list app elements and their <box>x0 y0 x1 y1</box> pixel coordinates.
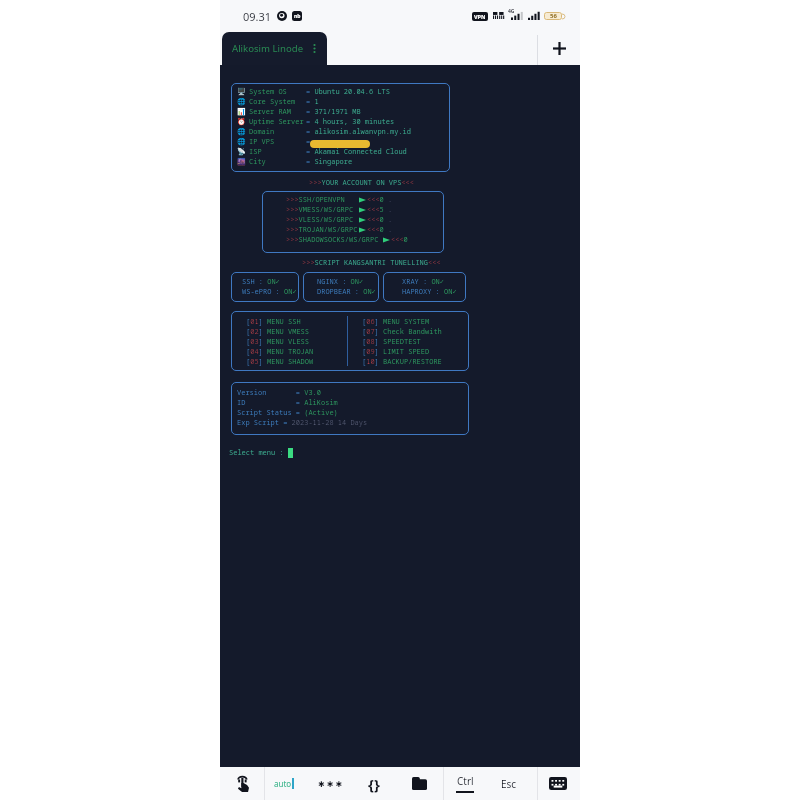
staticText: 56 <box>550 12 557 20</box>
staticText: Domain <box>249 127 275 137</box>
staticText: ISP <box>249 147 262 157</box>
staticText: [09] LIMIT SPEED <box>362 347 430 357</box>
staticText: = 371/1971 MB <box>306 107 361 117</box>
staticText: City <box>249 157 266 167</box>
staticText: >>>VLESS/WS/GRPC <box>286 215 358 225</box>
staticText: 📊 <box>237 108 246 116</box>
staticText: = 1 <box>306 97 319 107</box>
staticText: auto <box>274 778 292 789</box>
button[interactable]: auto <box>264 767 304 800</box>
staticText: Select menu : <box>229 448 288 458</box>
button[interactable]: ✱ ✱ ✱ <box>307 767 353 800</box>
staticText: 4G <box>508 8 515 15</box>
staticText: Script Status = (Active) <box>237 408 338 418</box>
staticText: = <box>306 137 315 147</box>
staticText: Exp Script = 2023-11-28 14 Days <box>237 418 368 428</box>
staticText: DROPBEAR : ON✓ <box>317 287 376 297</box>
staticText: VPN <box>474 13 486 20</box>
staticText: SSH : ON✓ <box>242 277 280 287</box>
staticText: WS-ePRO : ON✓ <box>242 287 297 297</box>
staticText: >>>SHADOWSOCKS/WS/GRPC <box>286 235 383 245</box>
staticText: >>>TROJAN/WS/GRPC <box>286 225 358 235</box>
staticText: Server RAM <box>249 107 291 117</box>
staticText: >>>SSH/OPENVPN <box>286 195 358 205</box>
staticText: HAPROXY : ON✓ <box>402 287 457 297</box>
staticText: <<<0 . <box>367 225 393 235</box>
staticText: >>>YOUR ACCOUNT ON VPS<<< <box>309 178 414 188</box>
staticText: XRAY : ON✓ <box>402 277 445 287</box>
staticText: = Singapore <box>306 157 353 167</box>
staticText: [05] MENU SHADOW <box>246 357 314 367</box>
staticText: = Ubuntu 20.04.6 LTS <box>306 87 390 97</box>
staticText: 09.31 <box>243 9 272 24</box>
button[interactable]: Files <box>396 767 442 800</box>
button[interactable]: Keyboard <box>536 767 579 800</box>
staticText: >>>VMESS/WS/GRPC <box>286 205 358 215</box>
staticText: NGINX : ON✓ <box>317 277 364 287</box>
staticText: IP VPS <box>249 137 275 147</box>
staticText: [01] MENU SSH <box>246 317 301 327</box>
staticText: Version = V3.0 <box>237 388 321 398</box>
staticText: System OS <box>249 87 287 97</box>
button[interactable]: {} <box>351 767 397 800</box>
staticText: [06] MENU SYSTEM <box>362 317 430 327</box>
staticText: Core System <box>249 97 296 107</box>
staticText: 🖥️ <box>237 88 246 96</box>
button[interactable]: Alikosim Linode <box>222 32 327 65</box>
button[interactable]: Ctrl <box>443 767 487 800</box>
staticText: = alikosim.alwanvpn.my.id <box>306 127 411 137</box>
staticText: Uptime Server <box>249 117 304 127</box>
staticText: 🌐 <box>237 98 246 106</box>
staticText: [04] MENU TROJAN <box>246 347 314 357</box>
staticText: <<<0 <box>391 235 408 245</box>
staticText: >>>SCRIPT KANGSANTRI TUNELLING<<< <box>302 258 441 268</box>
staticText: 🌐 <box>237 128 246 136</box>
staticText: Esc <box>501 777 517 791</box>
staticText: <<<0 . <box>367 195 393 205</box>
button[interactable]: New tab <box>538 32 580 65</box>
staticText: Alikosim Linode <box>232 42 304 55</box>
staticText: Ctrl <box>457 774 474 788</box>
staticText: [03] MENU VLESS <box>246 337 309 347</box>
staticText: {} <box>368 774 380 794</box>
staticText: = 4 hours, 30 minutes <box>306 117 395 127</box>
staticText: nb <box>294 13 301 20</box>
staticText: 📡 <box>237 148 246 156</box>
staticText: = Akamai Connected Cloud <box>306 147 407 157</box>
button[interactable]: Touch mode <box>221 767 264 800</box>
staticText: <<<5 . <box>367 205 393 215</box>
staticText: [10] BACKUP/RESTORE <box>362 357 442 367</box>
staticText: [08] SPEEDTEST <box>362 337 421 347</box>
staticText: ✱ ✱ ✱ <box>318 778 343 789</box>
staticText: [02] MENU VMESS <box>246 327 309 337</box>
button[interactable]: Esc <box>487 767 531 800</box>
staticText: <<<0 . <box>367 215 393 225</box>
staticText: ⏰ <box>237 118 246 126</box>
staticText: 🌆 <box>237 158 246 166</box>
staticText: ID = AliKosim <box>237 398 338 408</box>
staticText: [07] Check Bandwith <box>362 327 442 337</box>
staticText: 🌐 <box>237 138 246 146</box>
